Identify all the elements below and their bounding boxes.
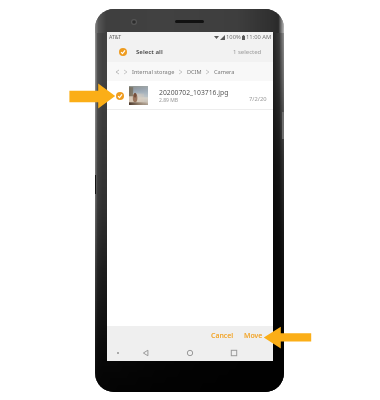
button[interactable]: 20200702_103716.jpg (107, 81, 273, 110)
staticText: 7/2/20 (249, 95, 267, 103)
staticText: 2.89 MB (159, 97, 179, 104)
staticText: Select all (136, 48, 163, 56)
staticText: 100% (226, 33, 241, 41)
staticText: AT&T (109, 33, 122, 40)
staticText: 20200702_103716.jpg (159, 88, 229, 97)
button[interactable]: DCIM (187, 68, 202, 76)
staticText: Cancel (211, 331, 234, 341)
button[interactable]: Cancel (208, 328, 237, 344)
button[interactable]: Recents (229, 348, 239, 358)
button[interactable]: Camera (214, 68, 235, 76)
button[interactable]: Select all (107, 41, 273, 62)
staticText: Move (244, 331, 263, 341)
button[interactable]: Move (241, 328, 266, 344)
button[interactable]: Home (185, 348, 195, 358)
staticText: 1 selected (233, 48, 262, 56)
button[interactable]: Menu (113, 348, 123, 358)
button[interactable]: Back (141, 348, 151, 358)
staticText: 11:00 AM (246, 33, 272, 41)
other: Up (116, 70, 119, 74)
button[interactable]: Internal storage (132, 68, 175, 76)
